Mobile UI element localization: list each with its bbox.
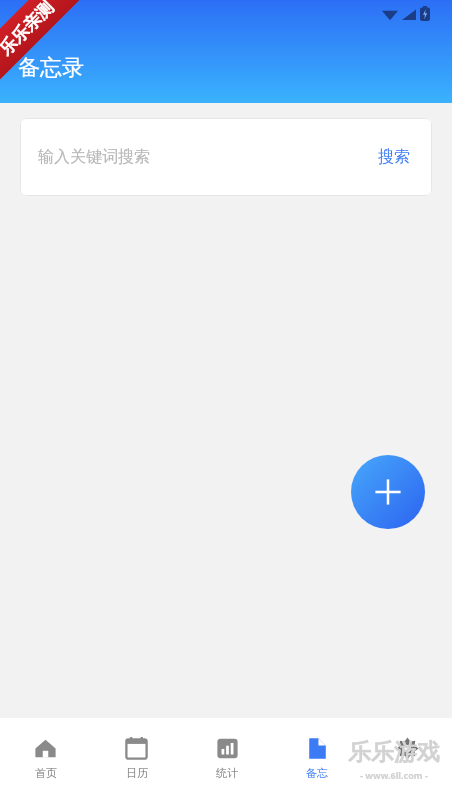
- button[interactable]: 设置: [362, 718, 452, 803]
- staticText: 日历: [126, 766, 148, 780]
- staticText: 搜索: [378, 147, 410, 167]
- staticText: 备忘录: [18, 54, 84, 82]
- button[interactable]: Add note: [351, 455, 425, 529]
- button[interactable]: 日历: [91, 718, 182, 803]
- button[interactable]: 输入关键词搜索: [38, 147, 374, 167]
- staticText: - www.6ll.com -: [360, 769, 428, 781]
- staticText: 首页: [35, 766, 57, 780]
- staticText: 乐乐游戏: [348, 738, 440, 767]
- button[interactable]: 首页: [0, 718, 91, 803]
- staticText: 乐乐亲测: [0, 0, 58, 60]
- staticText: 统计: [216, 766, 238, 780]
- staticText: 备忘: [306, 766, 328, 780]
- staticText: 输入关键词搜索: [38, 147, 150, 167]
- button[interactable]: 备忘: [272, 718, 362, 803]
- button[interactable]: 统计: [182, 718, 272, 803]
- button[interactable]: 搜索: [374, 141, 414, 173]
